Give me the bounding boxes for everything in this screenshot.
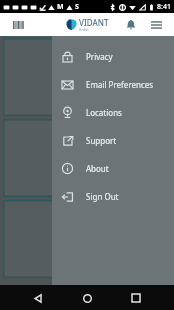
button[interactable]: Home: [76, 287, 98, 309]
staticText: S: [75, 2, 79, 12]
button[interactable]: About: [52, 154, 174, 182]
staticText: Support: [86, 135, 117, 146]
button[interactable]: Email Preferences: [52, 70, 174, 98]
staticText: M: [57, 2, 64, 12]
staticText: Sign Out: [86, 191, 119, 202]
button[interactable]: Privacy: [52, 42, 174, 70]
staticText: Email Preferences: [86, 79, 154, 90]
button[interactable]: Record a Walk: [3, 200, 171, 278]
staticText: Locations: [86, 107, 122, 118]
button[interactable]: Open navigation menu: [148, 16, 165, 33]
button[interactable]: Scan card: [11, 18, 25, 32]
button[interactable]: Support: [52, 126, 174, 154]
button[interactable]: Recent apps: [125, 287, 147, 309]
staticText: About: [86, 163, 109, 174]
staticText: 8:41: [157, 2, 171, 12]
button[interactable]: Deals: [3, 119, 171, 197]
button[interactable]: Close navigation menu: [0, 36, 174, 285]
button[interactable]: Locations: [52, 98, 174, 126]
staticText: Health: [79, 28, 89, 32]
button[interactable]: Notifications: [123, 17, 139, 33]
button[interactable]: Back: [27, 287, 49, 309]
button[interactable]: Find a Clinic: [3, 38, 171, 116]
staticText: VIDANT: [79, 17, 109, 28]
button[interactable]: Sign Out: [52, 182, 174, 210]
staticText: Privacy: [86, 51, 113, 62]
